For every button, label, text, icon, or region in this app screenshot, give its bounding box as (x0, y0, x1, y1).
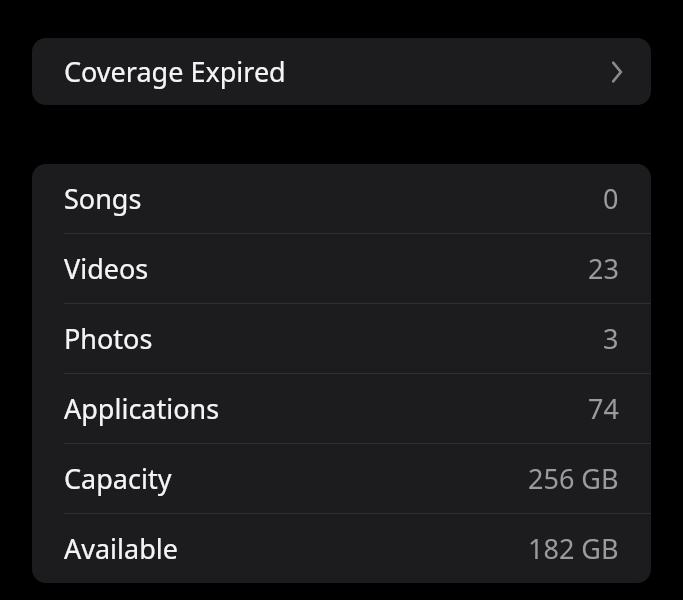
button[interactable]: Songs (32, 164, 651, 233)
button[interactable]: Applications (32, 374, 651, 443)
staticText: Photos (64, 320, 153, 357)
staticText: 0 (603, 180, 619, 217)
button[interactable]: Coverage Expired (32, 38, 651, 105)
staticText: 23 (588, 250, 619, 287)
staticText: Coverage Expired (64, 53, 609, 90)
staticText: Available (64, 530, 178, 567)
staticText: Videos (64, 250, 149, 287)
button[interactable]: Photos (32, 304, 651, 373)
button[interactable]: Available (32, 514, 651, 583)
button[interactable]: Videos (32, 234, 651, 303)
other: Open coverage details (609, 59, 625, 85)
staticText: Capacity (64, 460, 172, 497)
staticText: Applications (64, 390, 220, 427)
staticText: 74 (588, 390, 619, 427)
button[interactable]: Capacity (32, 444, 651, 513)
staticText: Songs (64, 180, 142, 217)
staticText: 3 (603, 320, 619, 357)
staticText: 182 GB (528, 530, 619, 567)
staticText: 256 GB (528, 460, 619, 497)
